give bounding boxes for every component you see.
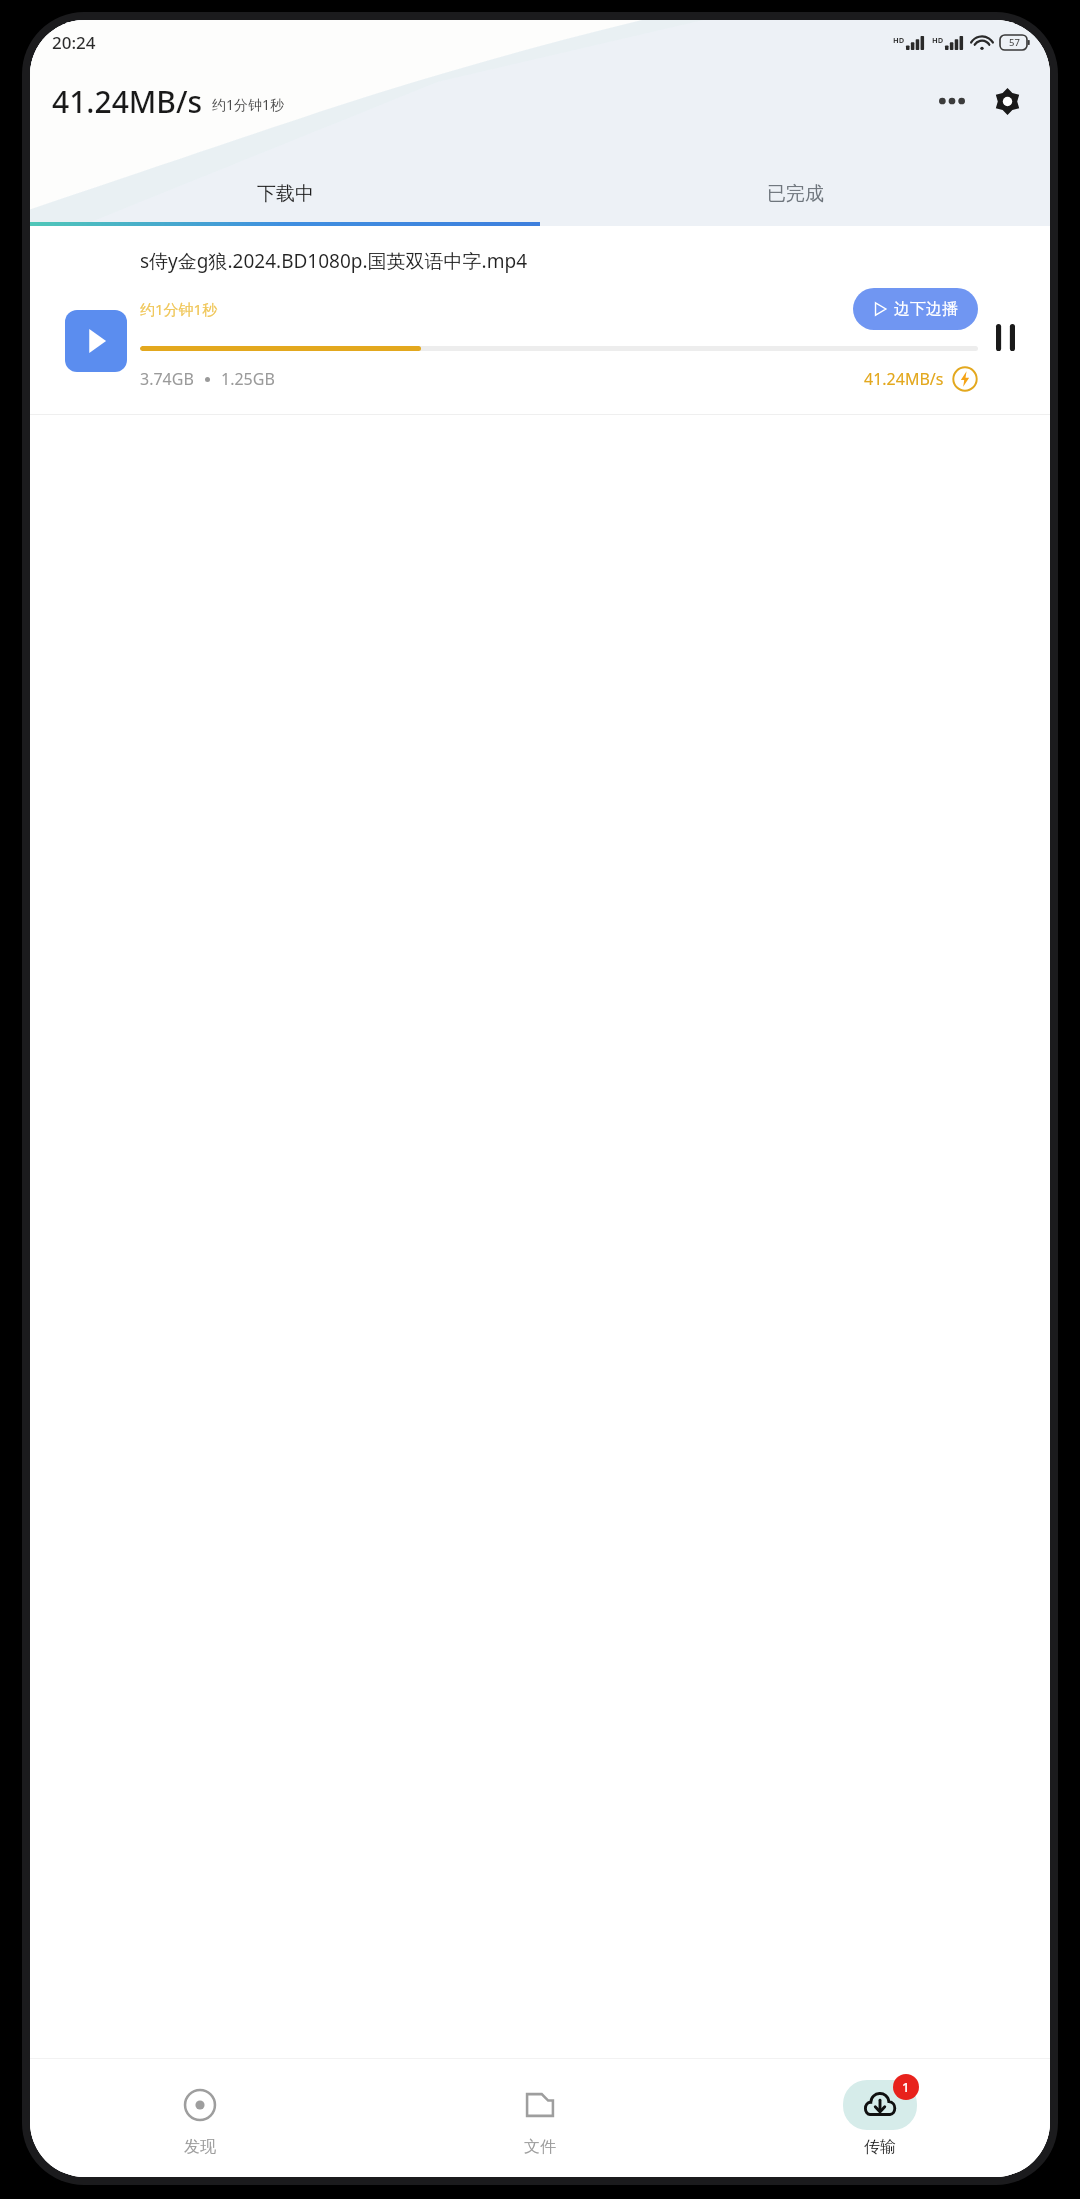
button[interactable]: 下载中 bbox=[30, 166, 540, 222]
button[interactable]: More options bbox=[930, 79, 974, 123]
staticText: 41.24MB/s bbox=[864, 368, 944, 390]
button[interactable]: 发现 bbox=[30, 2059, 370, 2177]
staticText: HD bbox=[932, 35, 944, 45]
staticText: 已完成 bbox=[767, 182, 824, 206]
button[interactable]: 1 bbox=[710, 2059, 1050, 2177]
staticText: 下载中 bbox=[257, 182, 314, 206]
button[interactable]: Play video bbox=[30, 226, 1050, 415]
staticText: 约1分钟1秒 bbox=[212, 95, 285, 114]
staticText: 发现 bbox=[184, 2137, 216, 2157]
staticText: 文件 bbox=[524, 2137, 556, 2157]
staticText: 41.24MB/s bbox=[52, 81, 203, 122]
staticText: 20:24 bbox=[52, 31, 96, 54]
staticText: s侍y金g狼.2024.BD1080p.国英双语中字.mp4 bbox=[140, 248, 528, 274]
button[interactable]: 已完成 bbox=[540, 166, 1050, 222]
button[interactable]: Pause download bbox=[978, 310, 1032, 364]
button[interactable]: 边下边播 bbox=[853, 288, 978, 330]
staticText: 57 bbox=[1009, 36, 1020, 49]
staticText: 3.74GB bbox=[140, 368, 194, 390]
staticText: 传输 bbox=[864, 2137, 896, 2157]
staticText: 1.25GB bbox=[221, 368, 275, 390]
button[interactable]: Play video bbox=[65, 310, 127, 372]
staticText: 1 bbox=[902, 2078, 910, 2096]
button[interactable]: 文件 bbox=[370, 2059, 710, 2177]
staticText: 边下边播 bbox=[894, 299, 958, 319]
button[interactable]: Settings bbox=[984, 78, 1030, 124]
staticText: 约1分钟1秒 bbox=[140, 299, 218, 319]
staticText: HD bbox=[893, 35, 905, 45]
